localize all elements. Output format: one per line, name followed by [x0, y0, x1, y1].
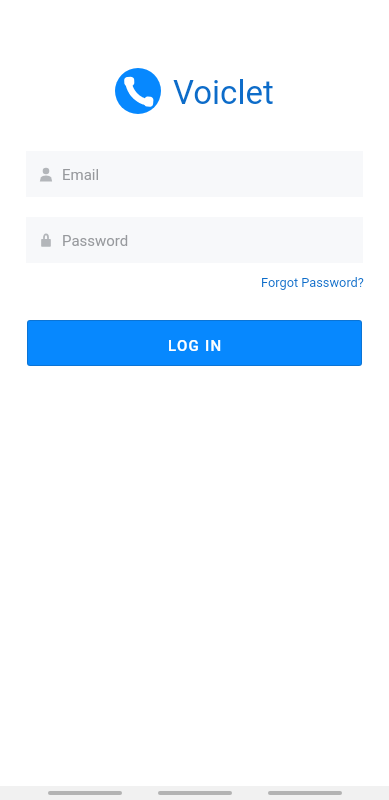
button[interactable]: Forgot Password?: [261, 272, 364, 292]
button[interactable]: Password: [26, 217, 363, 263]
button[interactable]: Back: [48, 791, 122, 795]
staticText: Voiclet: [173, 73, 274, 112]
staticText: Forgot Password?: [261, 275, 364, 290]
staticText: Email: [62, 166, 100, 184]
staticText: Password: [62, 232, 129, 250]
button[interactable]: Email: [26, 151, 363, 197]
button[interactable]: Recent apps: [268, 791, 342, 795]
button[interactable]: LOG IN: [28, 321, 361, 365]
button[interactable]: Home: [158, 791, 232, 795]
staticText: LOG IN: [168, 337, 223, 355]
